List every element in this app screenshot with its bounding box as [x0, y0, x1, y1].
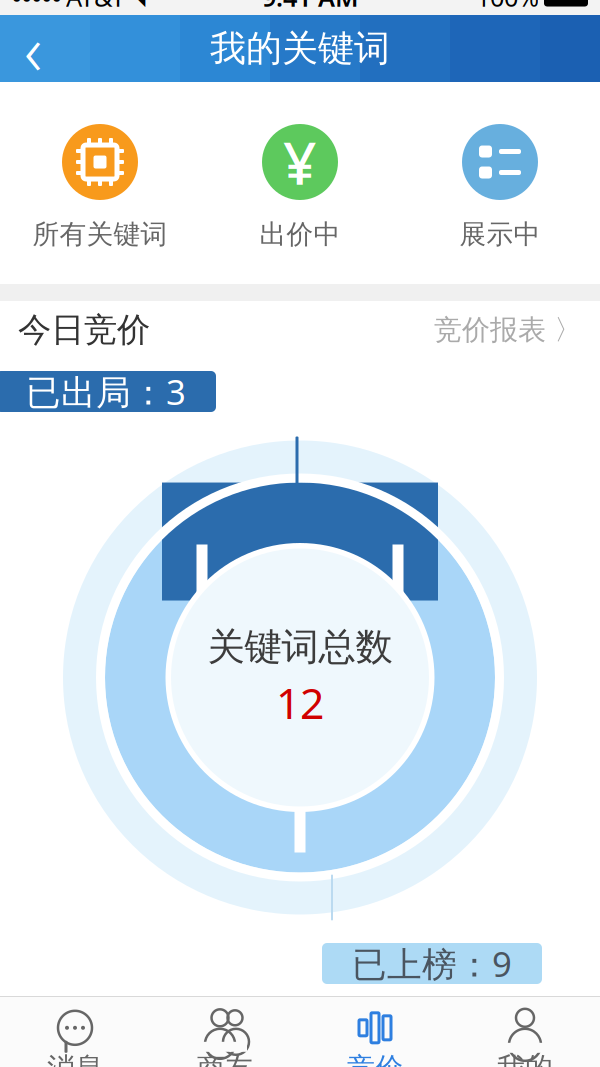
- staticText: 所有关键词: [32, 218, 167, 251]
- staticText: 我的关键词: [210, 26, 390, 71]
- staticText: 商友: [197, 1051, 253, 1067]
- button[interactable]: 我的: [450, 997, 600, 1067]
- staticText: 今日竞价: [18, 309, 150, 350]
- staticText: 竞价报表: [434, 313, 546, 347]
- staticText: •••••: [12, 0, 62, 14]
- staticText: ‹: [24, 2, 42, 95]
- staticText: 消息: [47, 1051, 103, 1067]
- staticText: 展示中: [459, 218, 540, 251]
- button[interactable]: 今日竞价: [0, 301, 600, 359]
- button[interactable]: 竞价: [300, 997, 450, 1067]
- staticText: 100%: [476, 0, 539, 14]
- staticText: 竞价: [347, 1051, 403, 1067]
- button[interactable]: ¥: [200, 82, 400, 284]
- button[interactable]: Back: [0, 15, 66, 82]
- staticText: 关键词总数: [207, 624, 392, 670]
- staticText: 9:41 AM: [262, 0, 359, 14]
- staticText: ◥: [129, 0, 145, 9]
- staticText: ¥: [283, 123, 317, 201]
- button[interactable]: 消息: [0, 997, 150, 1067]
- staticText: 已出局：3: [26, 368, 186, 414]
- staticText: 〉: [546, 313, 582, 347]
- staticText: 12: [276, 674, 324, 731]
- staticText: 出价中: [259, 218, 340, 251]
- staticText: AT&T: [66, 0, 125, 14]
- button[interactable]: 展示中: [400, 82, 600, 284]
- staticText: 已上榜：9: [352, 940, 512, 986]
- button[interactable]: 所有关键词: [0, 82, 200, 284]
- staticText: 我的: [497, 1051, 553, 1067]
- button[interactable]: 商友: [150, 997, 300, 1067]
